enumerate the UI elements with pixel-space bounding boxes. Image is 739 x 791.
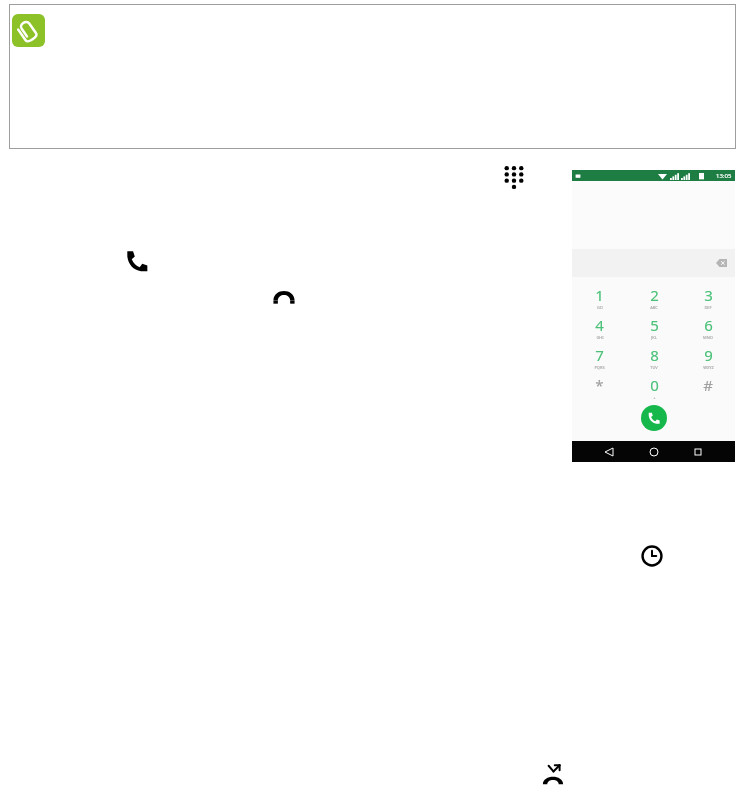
staticText: + [653,395,656,400]
staticText: ABC [650,305,658,310]
staticText: * [595,375,604,395]
button[interactable]: 8 [627,342,681,372]
button[interactable]: 0 [627,372,681,402]
button[interactable]: Back [601,444,617,460]
staticText: # [703,375,713,395]
staticText: 3 [704,285,713,305]
button[interactable]: 1 [572,282,627,312]
staticText: GD [597,305,603,310]
staticText: 6 [704,315,713,335]
staticText: 5 [650,315,659,335]
button[interactable]: Home [646,444,662,460]
staticText: 8 [650,345,659,365]
button[interactable]: 4 [572,312,627,342]
staticText: WXYZ [703,365,714,370]
staticText: 1 [595,285,604,305]
staticText: 4 [595,315,604,335]
button[interactable]: 5 [627,312,681,342]
staticText: DEF [704,305,712,310]
staticText: 7 [595,345,604,365]
staticText: 13:05 [716,172,732,180]
staticText: 9 [704,345,713,365]
button[interactable]: # [681,372,735,402]
staticText: 2 [650,285,659,305]
button[interactable]: Recents [690,444,706,460]
button[interactable]: 7 [572,342,627,372]
button[interactable]: 3 [681,282,735,312]
button[interactable]: Dialpad [501,164,527,190]
staticText: TUV [650,365,658,370]
button[interactable]: 9 [681,342,735,372]
button[interactable]: 6 [681,312,735,342]
staticText: PQRS [594,365,605,370]
staticText: MNO [703,335,713,340]
staticText: 0 [650,375,659,395]
button[interactable]: Missed call [542,764,564,786]
button[interactable]: Call history [641,545,663,567]
button[interactable]: Call [641,405,667,431]
button[interactable]: Attachment [12,14,45,47]
button[interactable]: Call [126,250,148,272]
staticText: GHI [596,335,604,340]
button[interactable]: * [572,372,627,402]
button[interactable]: End call [273,283,295,305]
button[interactable]: 2 [627,282,681,312]
staticText: JKL [651,335,657,340]
